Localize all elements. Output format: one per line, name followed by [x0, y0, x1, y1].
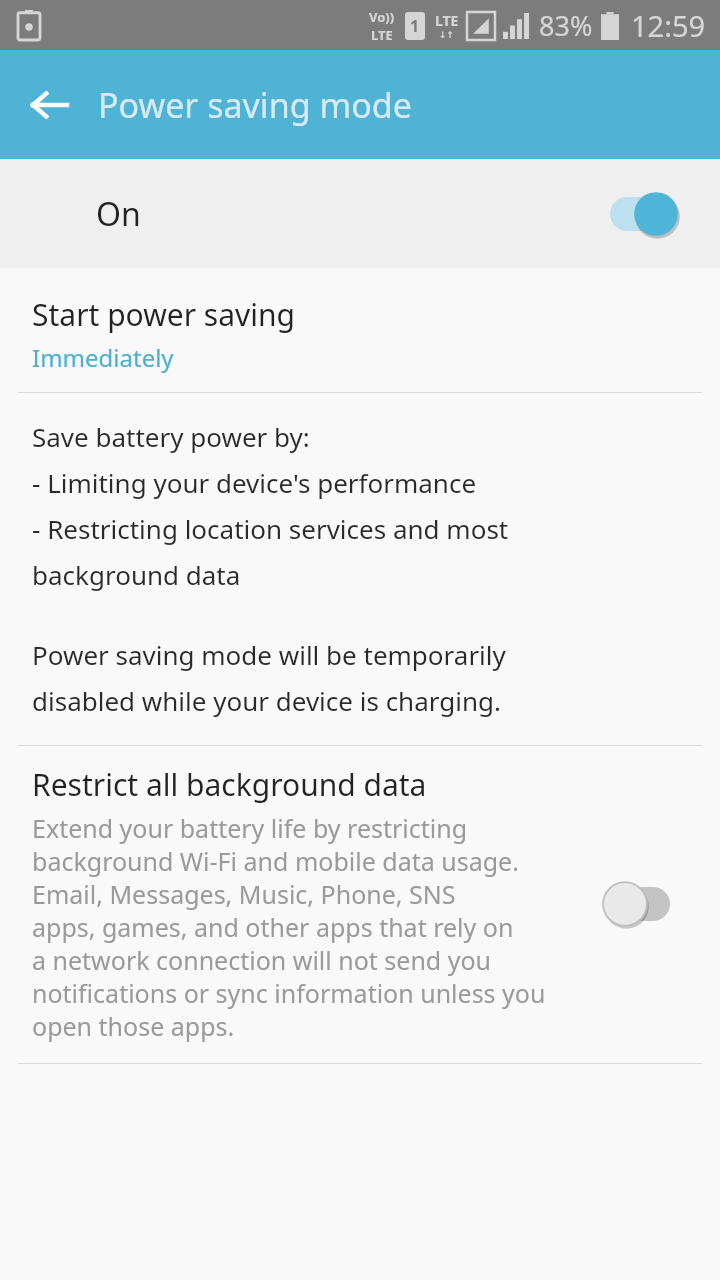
staticText: 83%: [539, 7, 593, 44]
staticText: LTE: [371, 26, 393, 44]
button[interactable]: Back: [18, 73, 82, 137]
button[interactable]: Start power saving: [0, 280, 720, 392]
staticText: Extend your battery life by restricting …: [32, 811, 546, 1043]
staticText: Vo)): [369, 8, 395, 26]
staticText: 1: [410, 15, 420, 37]
staticText: Start power saving: [32, 294, 296, 335]
staticText: Save battery power by: - Limiting your d…: [32, 419, 509, 593]
button[interactable]: Restrict all background data: [0, 746, 720, 1063]
staticText: 12:59: [631, 6, 706, 45]
staticText: Immediately: [32, 341, 174, 374]
staticText: ↓↑: [439, 30, 455, 40]
button[interactable]: On: [0, 159, 720, 268]
staticText: LTE: [435, 11, 459, 30]
staticText: Restrict all background data: [32, 764, 427, 805]
staticText: Power saving mode: [98, 82, 412, 128]
staticText: On: [96, 192, 141, 236]
staticText: Power saving mode will be temporarily di…: [32, 637, 506, 719]
